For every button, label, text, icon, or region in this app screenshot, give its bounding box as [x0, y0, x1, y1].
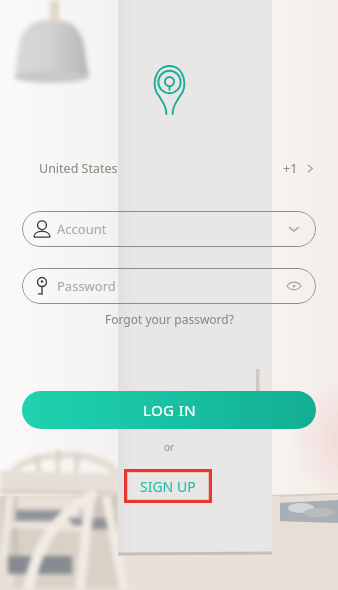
staticText: SIGN UP: [140, 477, 196, 496]
staticText: Password: [57, 277, 116, 295]
staticText: Account: [57, 220, 107, 238]
button[interactable]: SIGN UP: [124, 469, 212, 503]
button[interactable]: LOG IN: [22, 391, 316, 429]
button[interactable]: Forgot your password?: [99, 308, 240, 330]
staticText: LOG IN: [143, 400, 196, 420]
staticText: +1: [283, 160, 298, 177]
staticText: or: [164, 440, 175, 454]
button[interactable]: United States: [0, 152, 338, 184]
button[interactable]: Password: [22, 268, 316, 304]
button[interactable]: Show password: [283, 275, 305, 297]
button[interactable]: Account type: [283, 218, 305, 240]
button[interactable]: Account: [22, 211, 316, 247]
staticText: United States: [39, 160, 118, 177]
